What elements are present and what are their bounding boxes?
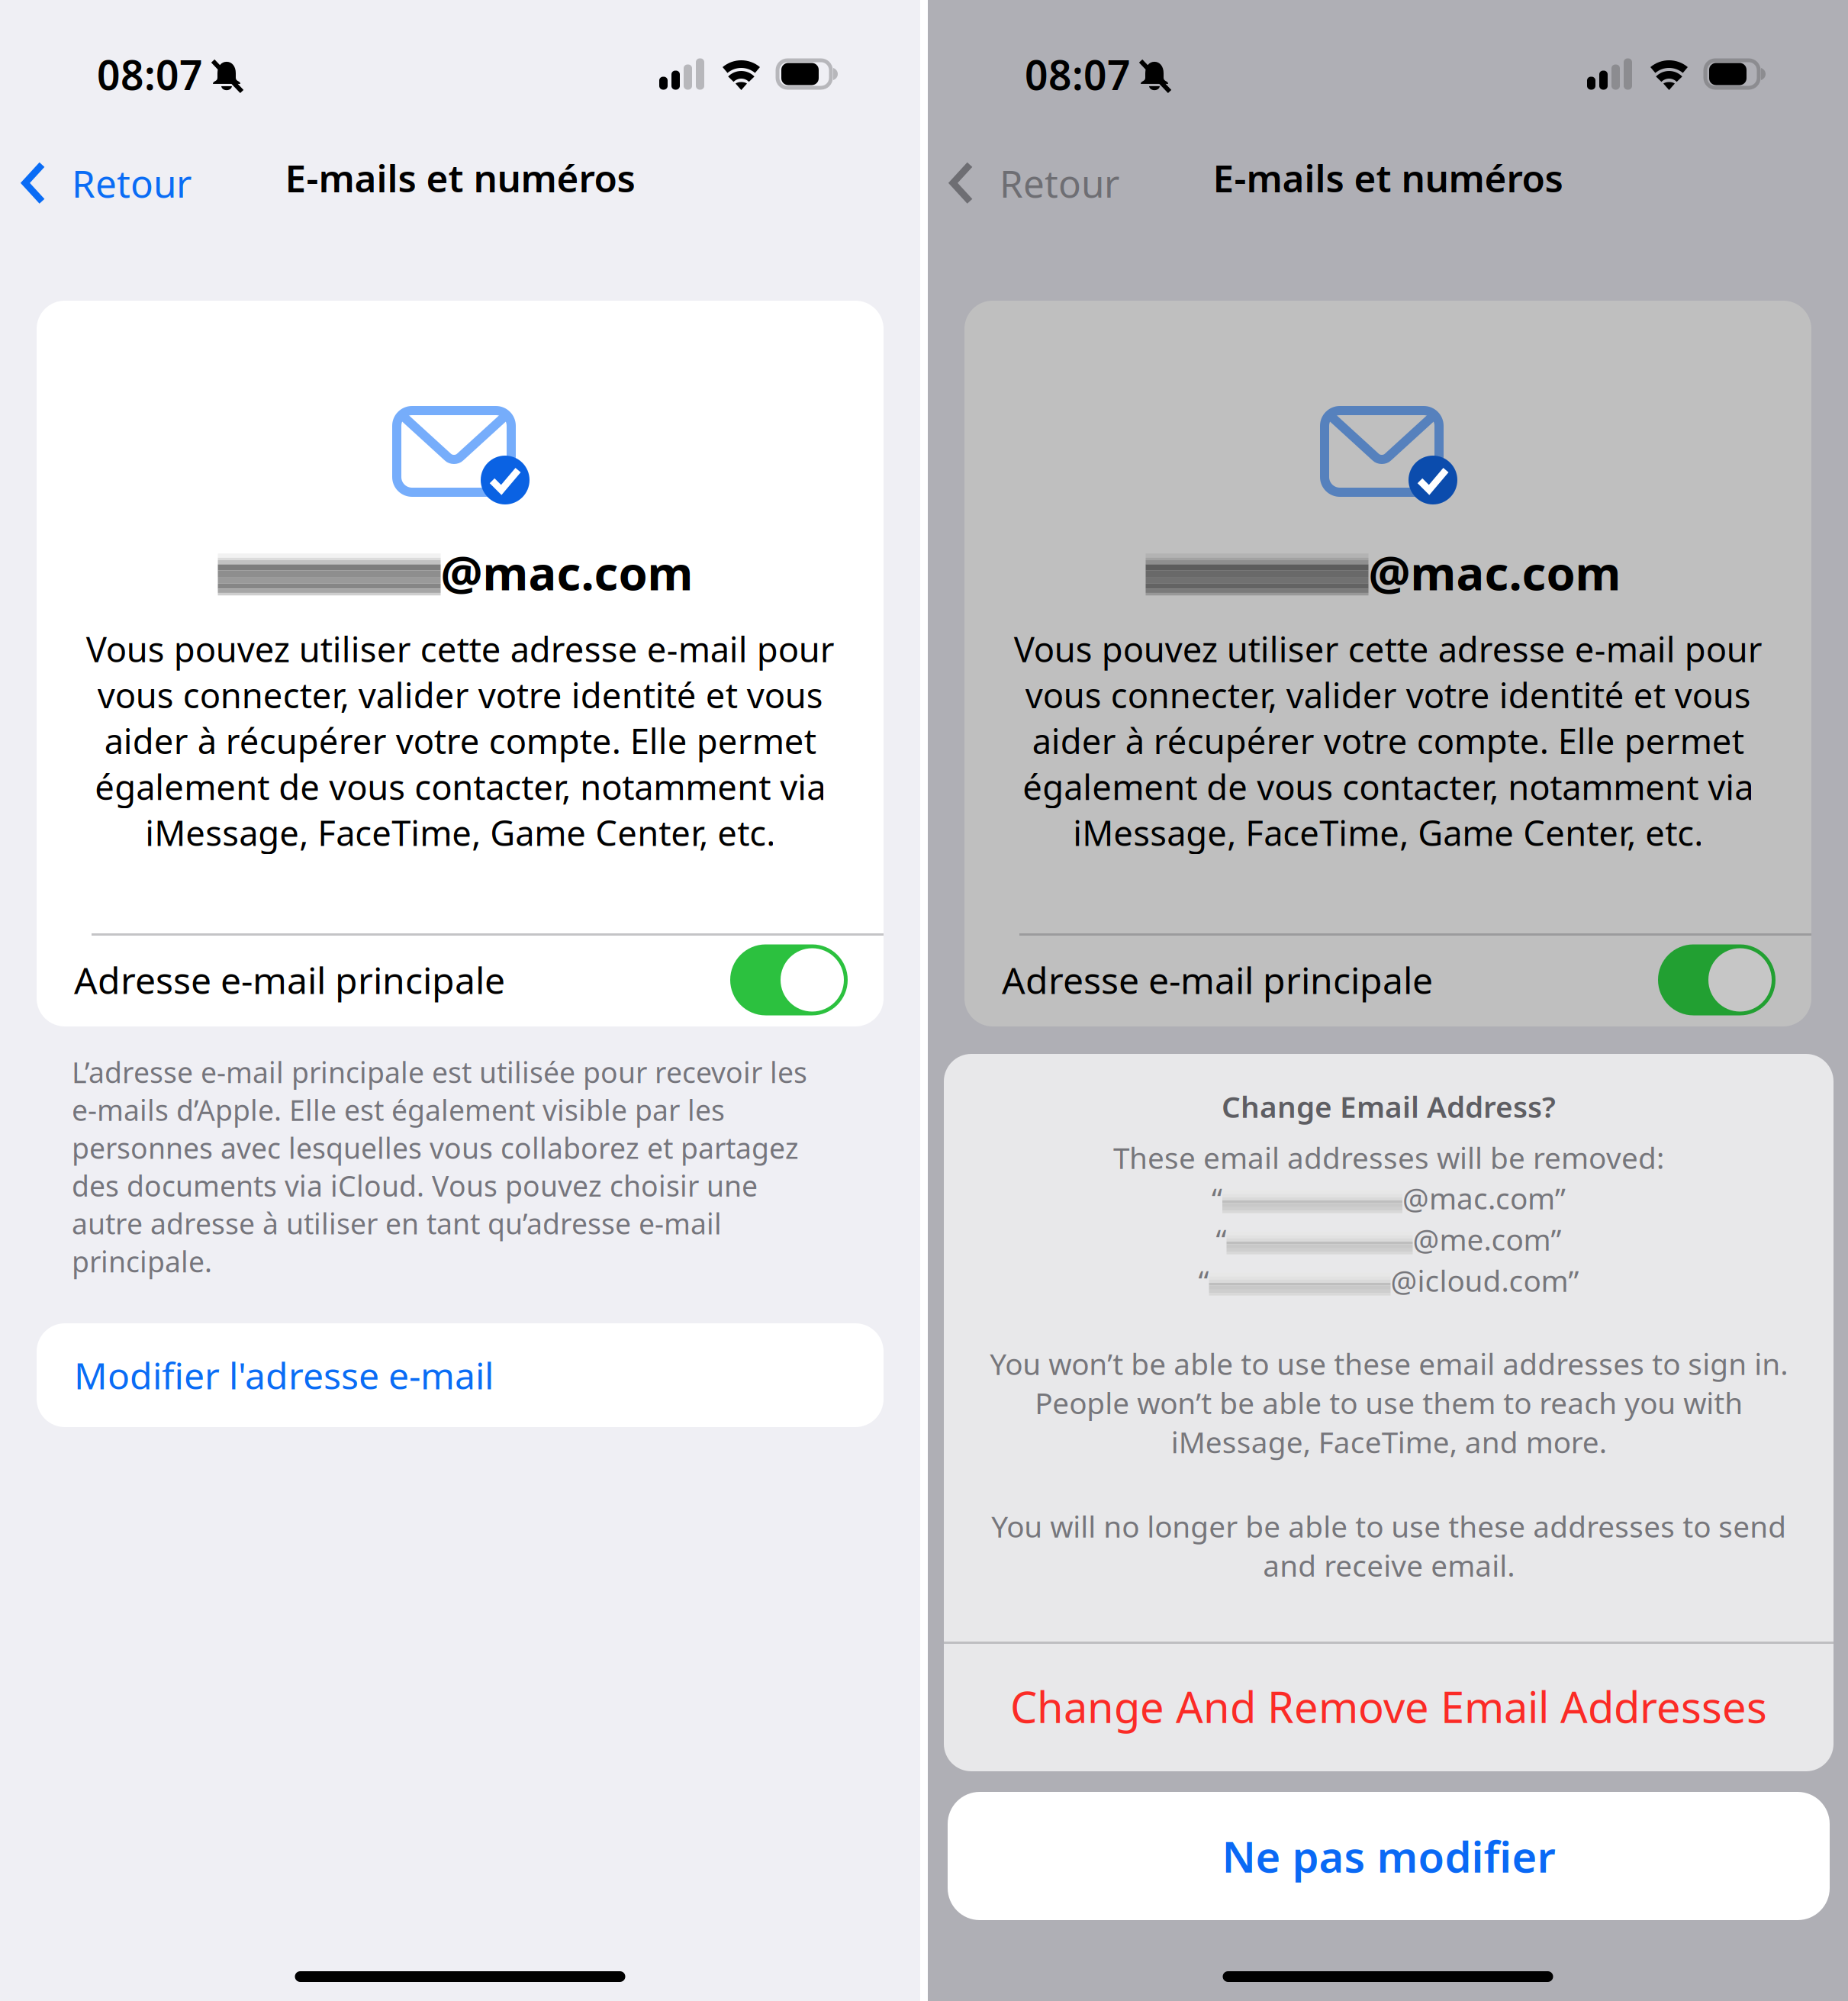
button[interactable]: Adresse e-mail principale [37, 933, 884, 1026]
staticText: You will no longer be able to use these … [991, 1506, 1786, 1585]
staticText: L’adresse e-mail principale est utilisée… [72, 1053, 807, 1280]
staticText: Retour [72, 158, 192, 208]
staticText: @me.com” [1413, 1220, 1561, 1259]
staticText: @mac.com [441, 541, 693, 603]
staticText: Change Email Address? [1222, 1087, 1556, 1126]
staticText: 08:07 [97, 47, 203, 101]
staticText: Vous pouvez utiliser cette adresse e-mai… [1014, 626, 1762, 855]
button[interactable]: Retour [928, 143, 1141, 223]
staticText: Ne pas modifier [1222, 1828, 1555, 1884]
staticText: @mac.com [1368, 541, 1621, 603]
staticText: “ [1198, 1261, 1209, 1300]
staticText: Modifier l'adresse e-mail [74, 1351, 494, 1399]
staticText: Change And Remove Email Addresses [1010, 1678, 1767, 1735]
button[interactable]: Retour [0, 143, 213, 223]
button[interactable]: Change And Remove Email Addresses [944, 1642, 1834, 1771]
staticText: “ [1216, 1220, 1227, 1259]
staticText: Adresse e-mail principale [74, 956, 505, 1004]
staticText: These email addresses will be removed: [1113, 1138, 1664, 1177]
staticText: E-mails et numéros [285, 153, 635, 203]
staticText: Retour [1000, 158, 1119, 208]
button[interactable]: Ne pas modifier [948, 1792, 1830, 1920]
button[interactable]: Modifier l'adresse e-mail [37, 1323, 884, 1427]
staticText: Adresse e-mail principale [1002, 956, 1433, 1004]
staticText: @icloud.com” [1391, 1261, 1579, 1300]
staticText: “ [1212, 1178, 1222, 1217]
button[interactable]: Adresse e-mail principale [964, 933, 1811, 1026]
staticText: 08:07 [1025, 47, 1131, 101]
staticText: You won’t be able to use these email add… [990, 1344, 1788, 1461]
staticText: E-mails et numéros [1213, 153, 1563, 203]
staticText: Vous pouvez utiliser cette adresse e-mai… [86, 626, 834, 855]
staticText: @mac.com” [1402, 1178, 1566, 1217]
